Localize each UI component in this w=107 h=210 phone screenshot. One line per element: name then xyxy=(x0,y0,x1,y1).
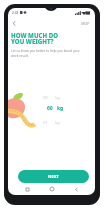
button[interactable]: Recents xyxy=(21,183,33,195)
button[interactable]: NEXT xyxy=(18,170,89,183)
staticText: kg xyxy=(57,105,64,112)
staticText: kg xyxy=(55,120,60,125)
staticText: kg xyxy=(55,95,60,100)
button[interactable]: Home xyxy=(46,183,58,195)
button[interactable]: Back xyxy=(70,183,82,195)
staticText: 2:33 xyxy=(12,11,19,15)
staticText: 60 xyxy=(47,105,53,112)
button[interactable]: Back xyxy=(9,18,20,29)
staticText: SKIP xyxy=(81,21,90,26)
button[interactable]: SKIP xyxy=(78,19,92,27)
staticText: 61 xyxy=(43,120,48,125)
staticText: HOW MUCH DO YOU WEIGHT? xyxy=(11,31,59,46)
staticText: Let us know you better to help you boost… xyxy=(11,49,80,58)
staticText: 59 xyxy=(43,95,48,100)
staticText: NEXT xyxy=(48,174,59,180)
